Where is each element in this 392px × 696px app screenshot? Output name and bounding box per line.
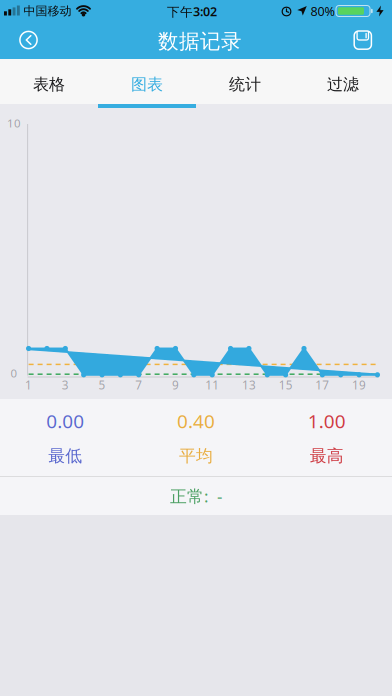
staticText: 9 bbox=[172, 377, 179, 393]
staticText: 0.00 bbox=[46, 408, 84, 434]
button[interactable]: 表格 bbox=[0, 59, 98, 104]
staticText: 11 bbox=[205, 377, 219, 393]
staticText: 下午3:02 bbox=[167, 3, 217, 20]
button[interactable]: 过滤 bbox=[294, 59, 392, 104]
staticText: 统计 bbox=[229, 74, 261, 95]
staticText: 7 bbox=[135, 377, 142, 393]
staticText: 3 bbox=[62, 377, 69, 393]
staticText: 最高 bbox=[310, 445, 344, 467]
button[interactable]: 统计 bbox=[196, 59, 294, 104]
button[interactable]: 图表 bbox=[98, 59, 196, 104]
staticText: 10 bbox=[7, 115, 21, 131]
staticText: 1.00 bbox=[308, 408, 346, 434]
staticText: 图表 bbox=[131, 74, 163, 95]
staticText: 最低 bbox=[48, 445, 82, 467]
staticText: 平均 bbox=[179, 445, 213, 467]
staticText: 0.40 bbox=[177, 408, 215, 434]
staticText: 正常: - bbox=[170, 485, 222, 507]
staticText: 19 bbox=[352, 377, 366, 393]
staticText: 5 bbox=[98, 377, 105, 393]
staticText: 15 bbox=[279, 377, 293, 393]
staticText: 17 bbox=[315, 377, 329, 393]
staticText: 过滤 bbox=[327, 74, 359, 95]
button[interactable]: Back bbox=[14, 25, 43, 54]
staticText: 数据记录 bbox=[158, 28, 242, 54]
staticText: 中国移动 bbox=[23, 3, 71, 18]
staticText: 表格 bbox=[33, 74, 65, 95]
staticText: 13 bbox=[242, 377, 256, 393]
staticText: 80% bbox=[310, 3, 334, 20]
button[interactable]: Save bbox=[348, 25, 377, 54]
staticText: 1 bbox=[25, 377, 32, 393]
staticText: 0 bbox=[10, 365, 17, 381]
